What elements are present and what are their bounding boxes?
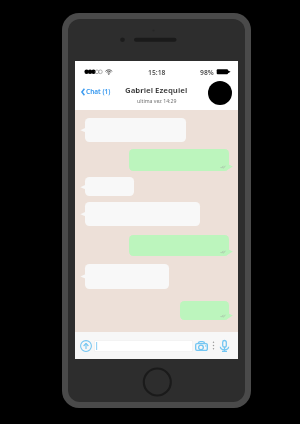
button[interactable] [129,235,229,256]
staticText: Gabriel Ezequiel [125,85,188,96]
button[interactable]: Chat (1) [81,87,111,96]
staticText: 98% [200,68,214,77]
button[interactable] [129,149,229,171]
staticText: ultima vez 14:29 [137,97,177,104]
button[interactable] [180,301,229,320]
button[interactable]: Attach [79,339,93,353]
staticText: 15:18 [148,68,166,77]
button[interactable]: Contact photo [208,81,232,105]
button[interactable] [85,177,134,196]
button[interactable]: Voice message [218,339,231,352]
button[interactable]: Camera [194,339,208,353]
staticText: Chat (1) [86,87,111,96]
button[interactable] [94,340,193,352]
